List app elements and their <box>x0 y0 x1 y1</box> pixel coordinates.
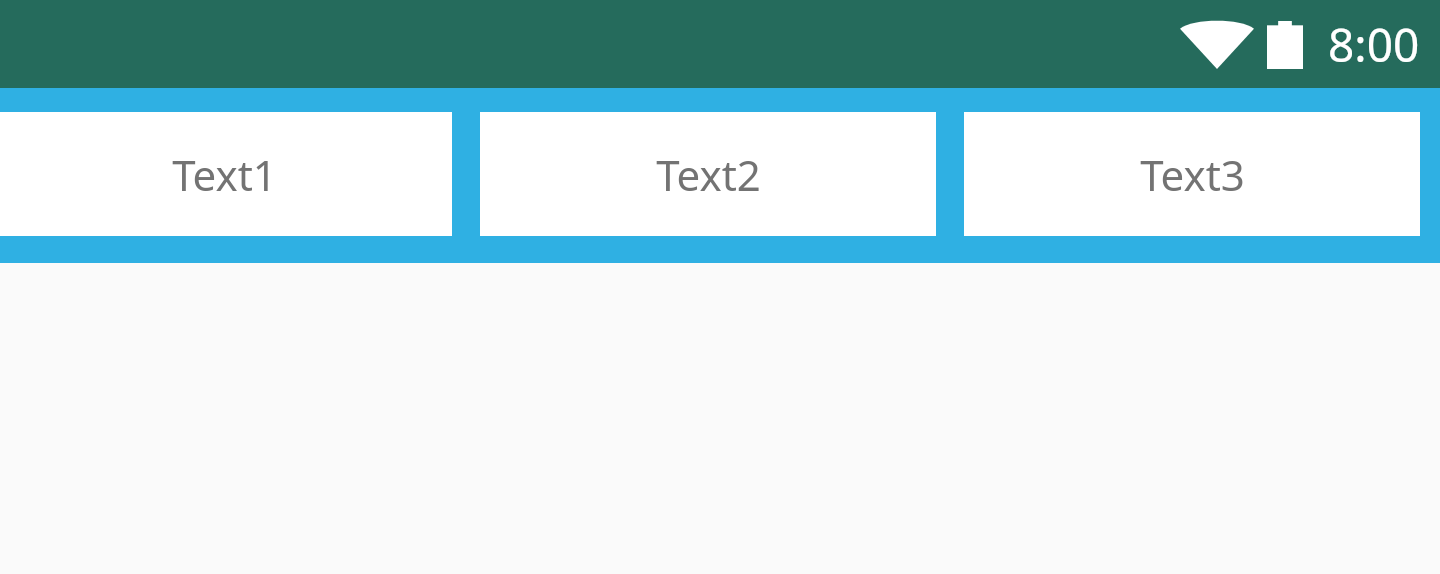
staticText: 8:00 <box>1328 13 1420 76</box>
button[interactable]: Text3 <box>964 112 1420 236</box>
staticText: Text1 <box>172 146 277 203</box>
button[interactable]: Text2 <box>480 112 936 236</box>
other: Battery full <box>1267 21 1303 69</box>
staticText: Text3 <box>1140 146 1245 203</box>
button[interactable]: Text1 <box>0 112 452 236</box>
staticText: Text2 <box>656 146 761 203</box>
other: Wi-Fi signal full <box>1180 21 1254 69</box>
